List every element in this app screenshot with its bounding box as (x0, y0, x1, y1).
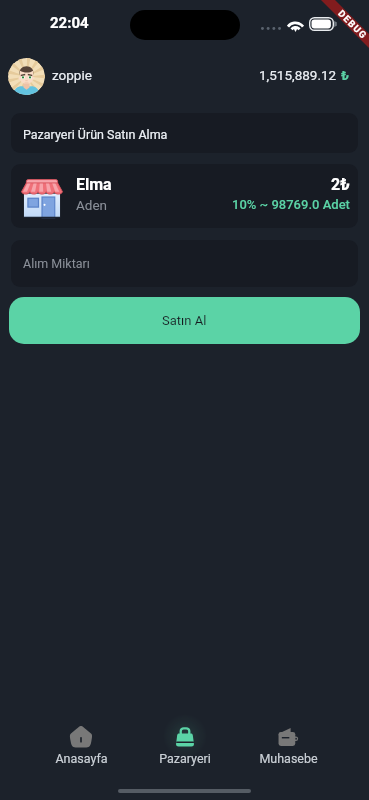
staticText: zoppie (52, 67, 92, 83)
staticText: 22:04 (50, 14, 89, 32)
button[interactable]: Alım Miktarı (11, 240, 358, 287)
button[interactable]: Satın Al (9, 297, 360, 344)
staticText: DEBUG (336, 8, 369, 42)
staticText: Aden (76, 197, 108, 213)
staticText: Pazaryeri (159, 751, 211, 766)
button[interactable]: Elma (11, 164, 358, 228)
button[interactable]: Pazaryeri (135, 717, 235, 779)
staticText: 10% ~ 98769.0 Adet (232, 197, 350, 212)
staticText: Anasayfa (55, 751, 108, 766)
button[interactable]: Profile (8, 58, 45, 95)
staticText: 1,515,889.12 (259, 67, 337, 83)
staticText: Pazaryeri Ürün Satın Alma (23, 127, 168, 142)
staticText: Alım Miktarı (23, 256, 90, 271)
staticText: Satın Al (162, 313, 207, 328)
staticText: Elma (76, 175, 112, 194)
staticText: 2₺ (331, 175, 350, 194)
button[interactable]: Pazaryeri Ürün Satın Alma (11, 113, 358, 153)
button[interactable]: Muhasebe (238, 717, 338, 779)
staticText: ₺ (341, 67, 350, 83)
staticText: Muhasebe (259, 751, 318, 766)
button[interactable]: Anasayfa (31, 717, 131, 779)
